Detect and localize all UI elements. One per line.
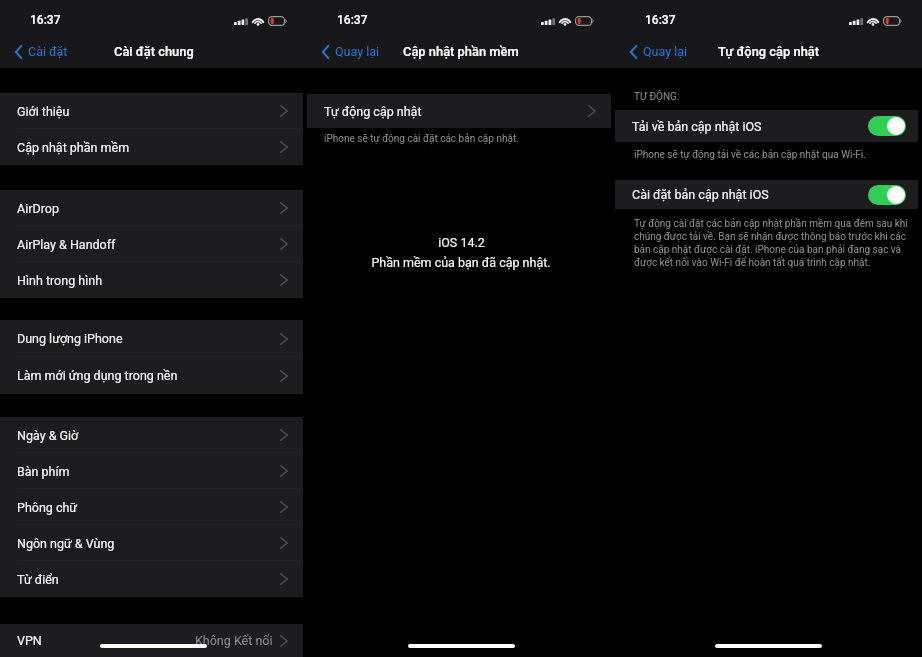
staticText: Từ điển [17, 572, 59, 587]
staticText: iPhone sẽ tự động cài đặt các bản cập nh… [324, 133, 519, 145]
button[interactable]: Bật/tắt Tải về bản cập nhật iOS [868, 116, 906, 136]
staticText: Bàn phím [17, 464, 70, 479]
button[interactable]: Quay lại Quay lại [322, 34, 380, 68]
staticText: Cập nhật phần mềm [403, 44, 519, 59]
staticText: Giới thiệu [17, 104, 70, 119]
staticText: VPN [17, 633, 42, 648]
staticText: Tự động cập nhật [324, 104, 422, 119]
staticText: Tải về bản cập nhật iOS [632, 119, 762, 134]
button[interactable]: VPN [0, 624, 303, 657]
staticText: Tự động cập nhật [718, 44, 820, 59]
button[interactable]: Cập nhật phần mềm [0, 129, 303, 165]
staticText: Ngày & Giờ [17, 428, 79, 443]
staticText: AirPlay & Handoff [17, 237, 116, 252]
button[interactable]: Dung lượng iPhone [0, 320, 303, 357]
staticText: Hình trong hình [17, 273, 103, 288]
staticText: Tự động cài đặt các bản cập nhật phần mề… [634, 218, 915, 268]
button[interactable]: Hình trong hình [0, 262, 303, 298]
button[interactable]: Quay lại Quay lại [630, 34, 688, 68]
staticText: AirDrop [17, 201, 59, 216]
button[interactable]: AirDrop [0, 190, 303, 226]
staticText: Quay lại [335, 44, 380, 59]
button[interactable]: Cài đặt bản cập nhật iOS [615, 180, 918, 209]
staticText: Cài đặt [28, 44, 68, 59]
staticText: 16:37 [337, 13, 368, 27]
staticText: 16:37 [645, 13, 676, 27]
button[interactable]: AirPlay & Handoff [0, 226, 303, 262]
staticText: Dung lượng iPhone [17, 331, 123, 346]
button[interactable]: Làm mới ứng dụng trong nền [0, 357, 303, 394]
staticText: Phần mềm của bạn đã cập nhật. [371, 255, 551, 270]
staticText: iPhone sẽ tự động tải về các bản cập nhậ… [634, 149, 866, 161]
button[interactable]: Ngôn ngữ & Vùng [0, 525, 303, 561]
staticText: Cài đặt chung [114, 44, 194, 59]
button[interactable]: Bật/tắt Cài đặt bản cập nhật iOS [868, 185, 906, 205]
staticText: Cập nhật phần mềm [17, 140, 130, 155]
staticText: Ngôn ngữ & Vùng [17, 536, 115, 551]
button[interactable]: Tự động cập nhật [307, 94, 611, 128]
staticText: Không Kết nối [195, 633, 273, 648]
staticText: 16:37 [30, 13, 61, 27]
button[interactable]: Bàn phím [0, 453, 303, 489]
button[interactable]: Ngày & Giờ [0, 417, 303, 453]
staticText: Phông chữ [17, 500, 78, 515]
staticText: Cài đặt bản cập nhật iOS [632, 187, 769, 202]
staticText: Làm mới ứng dụng trong nền [17, 368, 178, 383]
staticText: iOS 14.2 [438, 235, 485, 250]
button[interactable]: Tải về bản cập nhật iOS [615, 110, 918, 142]
staticText: TỰ ĐỘNG: [634, 91, 680, 103]
staticText: Quay lại [643, 44, 688, 59]
button[interactable]: Phông chữ [0, 489, 303, 525]
button[interactable]: Giới thiệu [0, 93, 303, 129]
button[interactable]: Quay lại Cài đặt [15, 34, 68, 68]
button[interactable]: Từ điển [0, 561, 303, 597]
